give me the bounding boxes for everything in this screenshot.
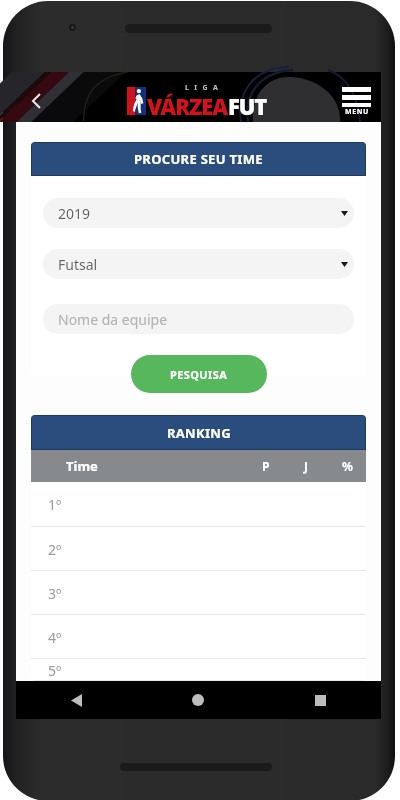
button[interactable]: Back xyxy=(20,86,53,116)
staticText: Time xyxy=(66,457,98,475)
staticText: Futsal xyxy=(58,255,98,274)
button[interactable]: Menu xyxy=(336,82,374,114)
staticText: 5º xyxy=(48,661,62,680)
staticText: % xyxy=(342,458,353,474)
button[interactable]: Nome da equipe xyxy=(43,304,354,334)
button[interactable]: Home xyxy=(137,681,259,719)
staticText: 3º xyxy=(48,584,62,603)
button[interactable]: PESQUISA xyxy=(131,355,267,393)
staticText: PROCURE SEU TIME xyxy=(134,150,263,168)
staticText: VÁRZEA xyxy=(147,91,228,121)
staticText: 2º xyxy=(48,540,62,559)
staticText: MENU xyxy=(345,107,369,117)
button[interactable]: 2º xyxy=(31,527,366,571)
staticText: 1º xyxy=(48,495,62,514)
button[interactable]: Recent apps xyxy=(259,681,381,719)
staticText: PESQUISA xyxy=(170,367,228,382)
button[interactable]: 3º xyxy=(31,571,366,615)
staticText: L I G A xyxy=(185,83,220,93)
staticText: J xyxy=(304,458,308,474)
staticText: P xyxy=(262,458,270,474)
button[interactable]: 2019 xyxy=(43,198,354,228)
button[interactable]: Back xyxy=(16,681,137,719)
staticText: 2019 xyxy=(58,204,91,223)
button[interactable]: 5º xyxy=(31,659,366,681)
staticText: FUT xyxy=(228,91,267,121)
button[interactable]: Futsal xyxy=(43,249,354,279)
button[interactable]: 1º xyxy=(31,482,366,527)
staticText: Nome da equipe xyxy=(58,310,168,329)
button[interactable]: 4º xyxy=(31,615,366,659)
staticText: RANKING xyxy=(167,424,231,442)
staticText: 4º xyxy=(48,628,62,647)
